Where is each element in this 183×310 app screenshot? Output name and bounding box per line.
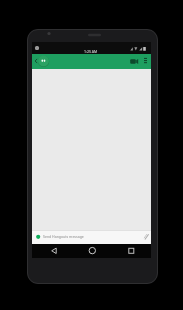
staticText: 1:25 AM <box>84 49 98 54</box>
button[interactable] <box>128 56 140 68</box>
staticText: Send Hangouts message <box>43 234 84 239</box>
button[interactable] <box>141 56 151 68</box>
button[interactable] <box>85 244 99 258</box>
button[interactable]: Send Hangouts message <box>32 230 151 244</box>
button[interactable] <box>124 244 138 258</box>
button[interactable] <box>32 54 52 69</box>
button[interactable] <box>47 244 61 258</box>
